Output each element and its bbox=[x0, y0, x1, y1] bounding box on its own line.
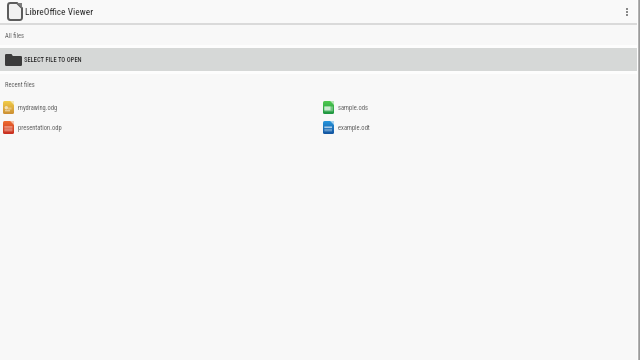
button[interactable]: presentation.odp bbox=[0, 117, 320, 137]
staticText: All files bbox=[5, 32, 24, 40]
staticText: LibreOffice Viewer bbox=[25, 6, 94, 17]
button[interactable]: More options bbox=[618, 0, 636, 23]
staticText: sample.ods bbox=[338, 104, 368, 112]
staticText: example.odt bbox=[338, 124, 370, 132]
staticText: presentation.odp bbox=[18, 124, 62, 132]
button[interactable]: SELECT FILE TO OPEN bbox=[0, 48, 640, 71]
staticText: mydrawing.odg bbox=[18, 104, 58, 112]
staticText: SELECT FILE TO OPEN bbox=[24, 56, 82, 64]
button[interactable]: example.odt bbox=[320, 117, 640, 137]
staticText: Recent files bbox=[5, 81, 35, 89]
button[interactable]: mydrawing.odg bbox=[0, 97, 320, 117]
button[interactable]: sample.ods bbox=[320, 97, 640, 117]
